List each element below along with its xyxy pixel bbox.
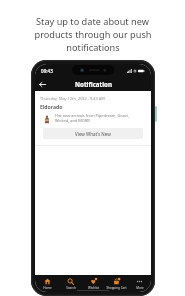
staticText: Stay up to date about new [36, 15, 149, 28]
button[interactable]: Back [35, 77, 49, 91]
staticText: Home [43, 286, 52, 290]
button[interactable]: Search [59, 277, 82, 291]
staticText: Shopping Cart [106, 286, 127, 290]
staticText: Thursday, May 12th, 2022 - 9:43 AM [40, 96, 105, 101]
button[interactable]: Wishlist [82, 277, 105, 291]
button[interactable]: More [128, 277, 151, 291]
button[interactable]: Thursday, May 12th, 2022 - 9:43 AM [35, 94, 151, 145]
staticText: Notification [75, 80, 112, 88]
button[interactable]: Home [35, 277, 59, 291]
staticText: products through our push [34, 28, 152, 41]
staticText: View What's New [75, 131, 111, 137]
button[interactable]: Shopping Cart [105, 277, 128, 291]
staticText: Eldorado [40, 103, 63, 110]
staticText: 09:43 [41, 68, 53, 74]
staticText: Wicked, and MORE! [55, 118, 91, 123]
staticText: notifications [66, 41, 120, 54]
staticText: Search [66, 286, 76, 290]
staticText: More [136, 286, 144, 290]
button[interactable]: View What's New [43, 128, 143, 139]
staticText: Hot new arrivals from Pipedream, Gonzi, [55, 113, 129, 118]
staticText: Wishlist [88, 286, 99, 290]
